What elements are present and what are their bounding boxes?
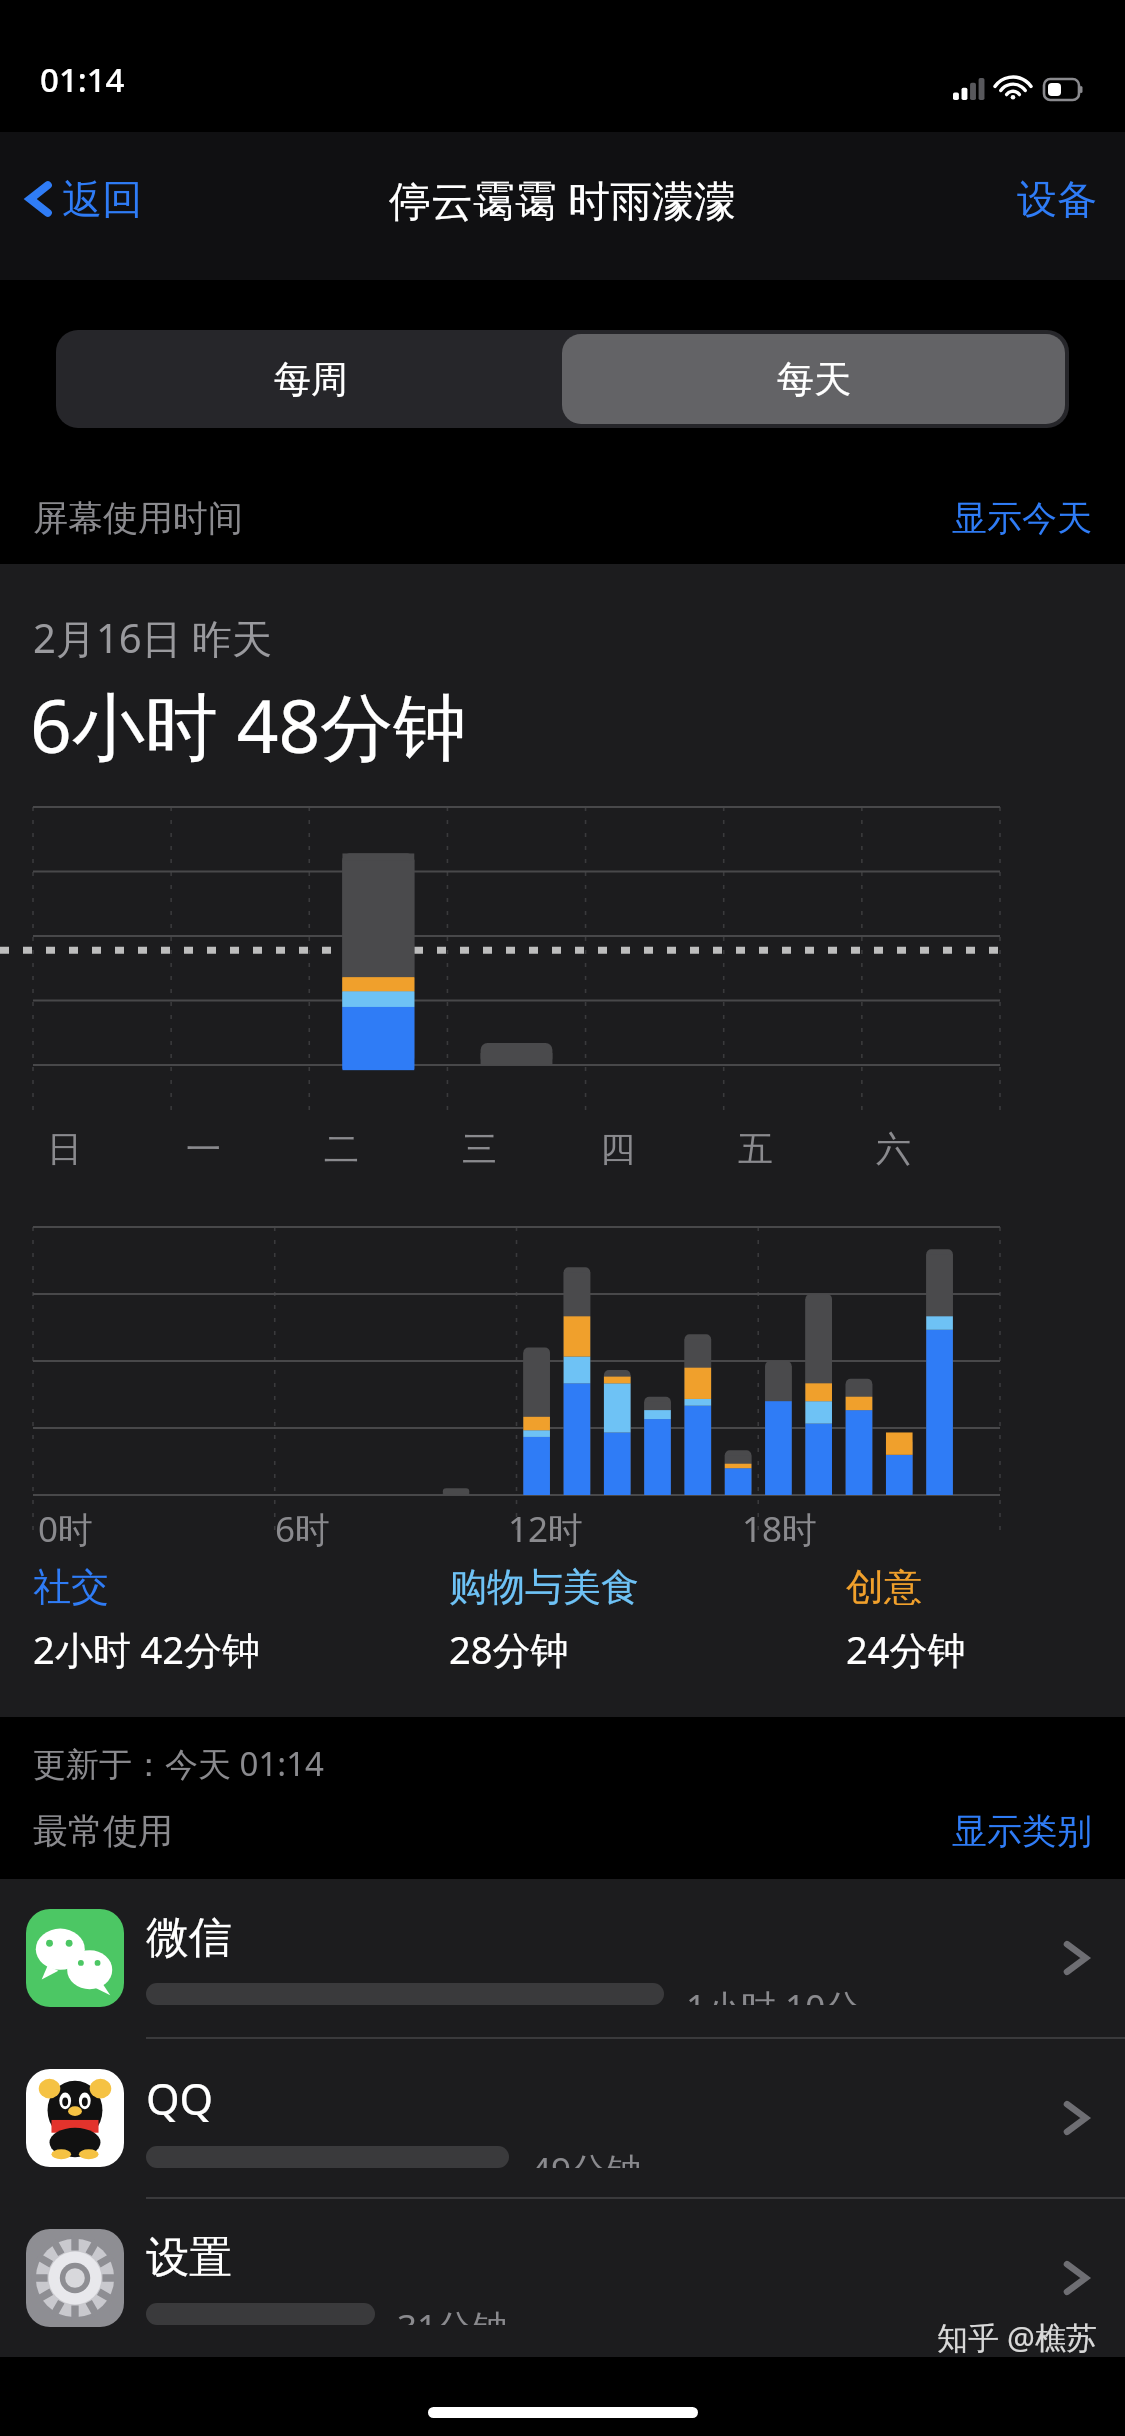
staticText: 一: [186, 1127, 221, 1171]
staticText: 二: [324, 1127, 359, 1171]
staticText: 每天: [777, 356, 851, 403]
button[interactable]: 设备: [1011, 166, 1103, 232]
staticText: 创意: [846, 1563, 922, 1611]
staticText: 49分钟: [531, 2146, 642, 2168]
staticText: 0时: [38, 1505, 94, 1553]
staticText: 购物与美食: [449, 1563, 639, 1611]
staticText: 31分钟: [397, 2303, 508, 2325]
staticText: 更新于：今天 01:14: [33, 1741, 1125, 1786]
staticText: 屏幕使用时间: [33, 496, 243, 540]
staticText: 2小时 42分钟: [33, 1623, 261, 1675]
staticText: 2月16日 昨天: [33, 610, 273, 665]
other: 详情: [1061, 1935, 1091, 1981]
staticText: 五: [738, 1127, 773, 1171]
button[interactable]: 显示今天: [952, 496, 1092, 540]
staticText: 返回: [62, 174, 142, 224]
staticText: 六: [876, 1127, 911, 1171]
button[interactable]: 微信: [0, 1879, 1125, 2037]
staticText: 01:14: [40, 57, 125, 102]
staticText: 28分钟: [449, 1623, 569, 1675]
staticText: QQ: [146, 2069, 214, 2128]
button[interactable]: 返回: [20, 166, 148, 232]
staticText: 设置: [146, 2231, 232, 2285]
staticText: 最常使用: [33, 1809, 173, 1853]
button[interactable]: 每天: [562, 334, 1065, 424]
button[interactable]: 每周: [60, 334, 562, 424]
staticText: 微信: [146, 1911, 232, 1965]
staticText: 18时: [742, 1505, 818, 1553]
staticText: 设备: [1017, 174, 1097, 224]
staticText: 日: [47, 1127, 82, 1171]
staticText: 6小时 48分钟: [30, 675, 467, 775]
other: 详情: [1061, 2255, 1091, 2301]
staticText: 社交: [33, 1563, 109, 1611]
staticText: 每周: [274, 356, 348, 403]
other: 详情: [1061, 2095, 1091, 2141]
staticText: 6时: [275, 1505, 331, 1553]
staticText: 24分钟: [846, 1623, 966, 1675]
staticText: 显示今天: [952, 496, 1092, 540]
staticText: 三: [462, 1127, 497, 1171]
button[interactable]: 设置: [0, 2199, 1125, 2357]
staticText: 停云霭霭 时雨濛濛: [389, 171, 736, 228]
staticText: 知乎 @樵苏: [937, 2316, 1097, 2358]
button[interactable]: 显示类别: [952, 1809, 1092, 1853]
staticText: 显示类别: [952, 1809, 1092, 1853]
staticText: 12时: [508, 1505, 584, 1553]
staticText: 1小时 10分钟: [686, 1983, 886, 2005]
button[interactable]: QQ: [0, 2039, 1125, 2197]
staticText: 四: [600, 1127, 635, 1171]
